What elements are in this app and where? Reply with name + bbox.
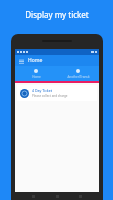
staticText: Home	[28, 57, 43, 64]
button[interactable]: 4 Day Ticket	[17, 85, 97, 101]
staticText: Please collect and charge	[32, 94, 68, 98]
staticText: Another/Transit	[67, 75, 90, 79]
staticText: 4 Day Ticket	[32, 88, 53, 93]
button[interactable]: Another/Transit	[57, 66, 99, 81]
button[interactable]: Open navigation menu	[18, 58, 24, 64]
staticText: Home	[32, 75, 41, 79]
button[interactable]: Home	[15, 66, 57, 81]
staticText: Display my ticket	[25, 9, 89, 20]
